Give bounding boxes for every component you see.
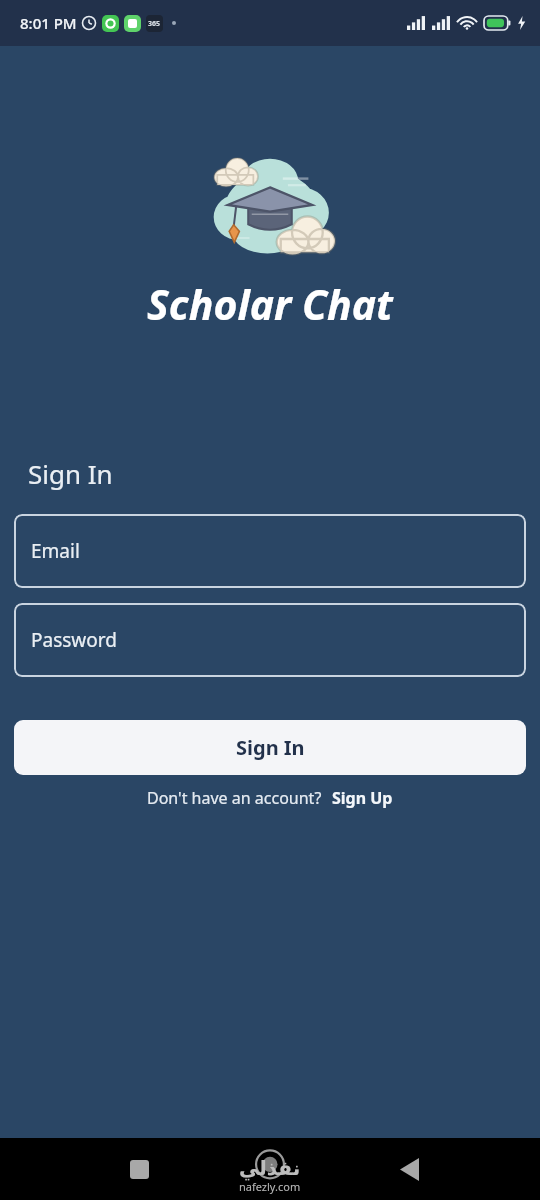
staticText: nafezly.com <box>239 1179 301 1194</box>
staticText: Password <box>31 627 117 653</box>
staticText: Scholar Chat <box>147 276 393 332</box>
button[interactable]: Sign Up <box>332 787 393 809</box>
staticText: Sign In <box>28 456 113 491</box>
button[interactable]: Sign In <box>14 720 526 775</box>
staticText: نفذلي <box>239 1156 301 1179</box>
staticText: Email <box>31 538 80 564</box>
staticText: 8:01 PM <box>20 13 77 33</box>
button[interactable]: Recent apps <box>120 1150 158 1188</box>
staticText: Don't have an account? <box>147 787 322 809</box>
button[interactable]: Email <box>14 514 526 588</box>
staticText: Sign Up <box>332 787 393 809</box>
button[interactable]: Back <box>388 1148 430 1190</box>
button[interactable]: Home <box>215 1140 325 1198</box>
staticText: 365 <box>148 19 161 29</box>
staticText: Sign In <box>236 734 305 761</box>
button[interactable]: Password <box>14 603 526 677</box>
